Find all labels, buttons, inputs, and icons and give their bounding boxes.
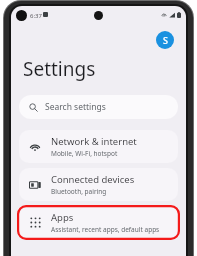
button[interactable]: Connected devices bbox=[19, 168, 178, 201]
staticText: Settings bbox=[23, 56, 96, 82]
staticText: Search settings bbox=[45, 101, 106, 113]
button[interactable]: Search settings bbox=[19, 95, 178, 119]
button[interactable]: Network & internet bbox=[19, 130, 178, 163]
button[interactable]: Account bbox=[156, 31, 174, 49]
staticText: Apps bbox=[51, 211, 74, 224]
button[interactable]: Apps bbox=[19, 206, 178, 239]
staticText: Bluetooth, pairing bbox=[51, 187, 107, 196]
staticText: S bbox=[163, 34, 168, 46]
staticText: Connected devices bbox=[51, 173, 135, 186]
staticText: 6:37 bbox=[30, 12, 42, 20]
staticText: Mobile, Wi-Fi, hotspot bbox=[51, 149, 118, 158]
staticText: Assistant, recent apps, default apps bbox=[51, 225, 160, 234]
staticText: Network & internet bbox=[51, 135, 137, 148]
